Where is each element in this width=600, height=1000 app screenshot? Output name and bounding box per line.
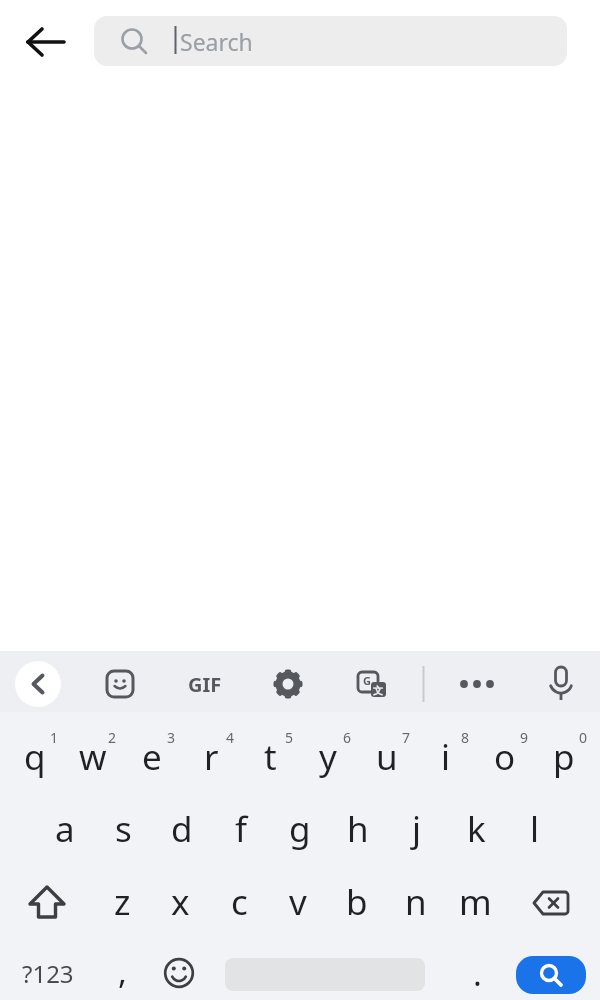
button[interactable] xyxy=(18,14,74,70)
button[interactable]: a xyxy=(36,800,94,858)
staticText: g xyxy=(289,805,311,853)
staticText: f xyxy=(235,805,248,853)
staticText: t xyxy=(264,733,277,781)
staticText: x xyxy=(171,878,190,926)
staticText: 文 xyxy=(373,684,383,697)
staticText: u xyxy=(376,733,398,781)
button[interactable]: y xyxy=(299,728,357,786)
button[interactable] xyxy=(520,875,582,931)
button[interactable]: , xyxy=(102,946,142,996)
button[interactable]: c xyxy=(210,873,268,931)
staticText: GIF xyxy=(188,671,222,698)
staticText: ?123 xyxy=(22,957,74,990)
staticText: m xyxy=(459,878,492,926)
button[interactable]: GIF xyxy=(180,667,230,701)
staticText: 6 xyxy=(343,728,352,747)
button[interactable]: z xyxy=(93,873,151,931)
staticText: G xyxy=(363,673,371,688)
button[interactable] xyxy=(542,663,580,705)
button[interactable]: r xyxy=(182,728,240,786)
staticText: 8 xyxy=(461,728,470,747)
staticText: d xyxy=(171,805,193,853)
staticText: a xyxy=(55,805,75,853)
staticText: s xyxy=(115,805,132,853)
staticText: n xyxy=(405,878,427,926)
button[interactable] xyxy=(15,661,61,707)
staticText: y xyxy=(319,733,337,781)
button[interactable]: u xyxy=(358,728,416,786)
staticText: b xyxy=(346,878,368,926)
button[interactable]: k xyxy=(447,800,505,858)
staticText: c xyxy=(231,878,248,926)
staticText: k xyxy=(467,805,486,853)
button[interactable]: i xyxy=(417,728,475,786)
staticText: w xyxy=(79,733,107,781)
staticText: v xyxy=(289,878,307,926)
staticText: z xyxy=(114,878,131,926)
button[interactable]: f xyxy=(212,800,270,858)
staticText: o xyxy=(494,733,516,781)
button[interactable]: m xyxy=(446,873,504,931)
button[interactable]: o xyxy=(476,728,534,786)
button[interactable]: . xyxy=(457,948,497,998)
staticText: 2 xyxy=(108,728,117,747)
staticText: . xyxy=(473,951,482,996)
staticText: 1 xyxy=(50,728,59,747)
button[interactable]: ?123 xyxy=(10,948,86,998)
button[interactable]: e xyxy=(123,728,181,786)
button[interactable]: j xyxy=(388,800,446,858)
button[interactable]: l xyxy=(506,800,564,858)
button[interactable]: q xyxy=(6,728,64,786)
button[interactable] xyxy=(18,875,76,931)
staticText: 0 xyxy=(579,728,588,747)
staticText: , xyxy=(118,949,127,994)
staticText: r xyxy=(204,733,219,781)
staticText: 5 xyxy=(285,728,294,747)
button[interactable]: g xyxy=(271,800,329,858)
staticText: Search xyxy=(180,26,253,57)
button[interactable] xyxy=(103,667,137,701)
staticText: 4 xyxy=(226,728,235,747)
staticText: 7 xyxy=(402,728,411,747)
button[interactable]: n xyxy=(387,873,445,931)
staticText: j xyxy=(412,805,422,853)
staticText: 9 xyxy=(520,728,529,747)
button[interactable]: v xyxy=(269,873,327,931)
button[interactable]: Search xyxy=(94,16,567,66)
button[interactable]: h xyxy=(329,800,387,858)
staticText: i xyxy=(441,733,451,781)
staticText: q xyxy=(24,733,46,781)
staticText: h xyxy=(347,805,369,853)
staticText: p xyxy=(553,733,575,781)
button[interactable]: G xyxy=(354,667,390,703)
staticText: l xyxy=(530,805,540,853)
button[interactable]: w xyxy=(64,728,122,786)
button[interactable]: x xyxy=(151,873,209,931)
button[interactable] xyxy=(458,667,496,701)
button[interactable]: p xyxy=(535,728,593,786)
button[interactable] xyxy=(271,667,305,701)
staticText: 3 xyxy=(167,728,176,747)
button[interactable]: d xyxy=(153,800,211,858)
button[interactable] xyxy=(516,956,586,994)
button[interactable]: s xyxy=(94,800,152,858)
button[interactable]: b xyxy=(328,873,386,931)
staticText: e xyxy=(142,733,162,781)
button[interactable] xyxy=(154,948,204,998)
button[interactable]: t xyxy=(241,728,299,786)
